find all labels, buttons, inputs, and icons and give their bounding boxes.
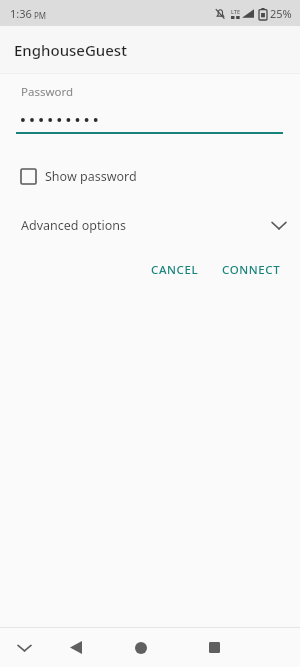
staticText: Advanced options [21, 217, 127, 234]
staticText: EnghouseGuest [14, 40, 127, 60]
staticText: Password [21, 84, 74, 100]
button[interactable]: Recent apps [177, 628, 251, 667]
other: Expand advanced options [272, 221, 286, 230]
button[interactable]: Show password [0, 161, 300, 191]
staticText: PM [34, 10, 47, 21]
button[interactable] [0, 112, 300, 128]
staticText: Show password [45, 168, 137, 185]
button[interactable]: CANCEL [145, 255, 205, 285]
staticText: 1:36 [10, 6, 32, 21]
button[interactable]: Home [104, 628, 177, 667]
staticText: CANCEL [151, 262, 199, 278]
button[interactable]: Advanced options [0, 209, 300, 241]
button[interactable]: Hide keyboard [0, 628, 48, 667]
staticText: LTE [231, 8, 240, 15]
button[interactable]: Back [48, 628, 104, 667]
button[interactable]: CONNECT [216, 255, 287, 285]
staticText: CONNECT [222, 262, 281, 278]
staticText: 25% [270, 6, 292, 21]
